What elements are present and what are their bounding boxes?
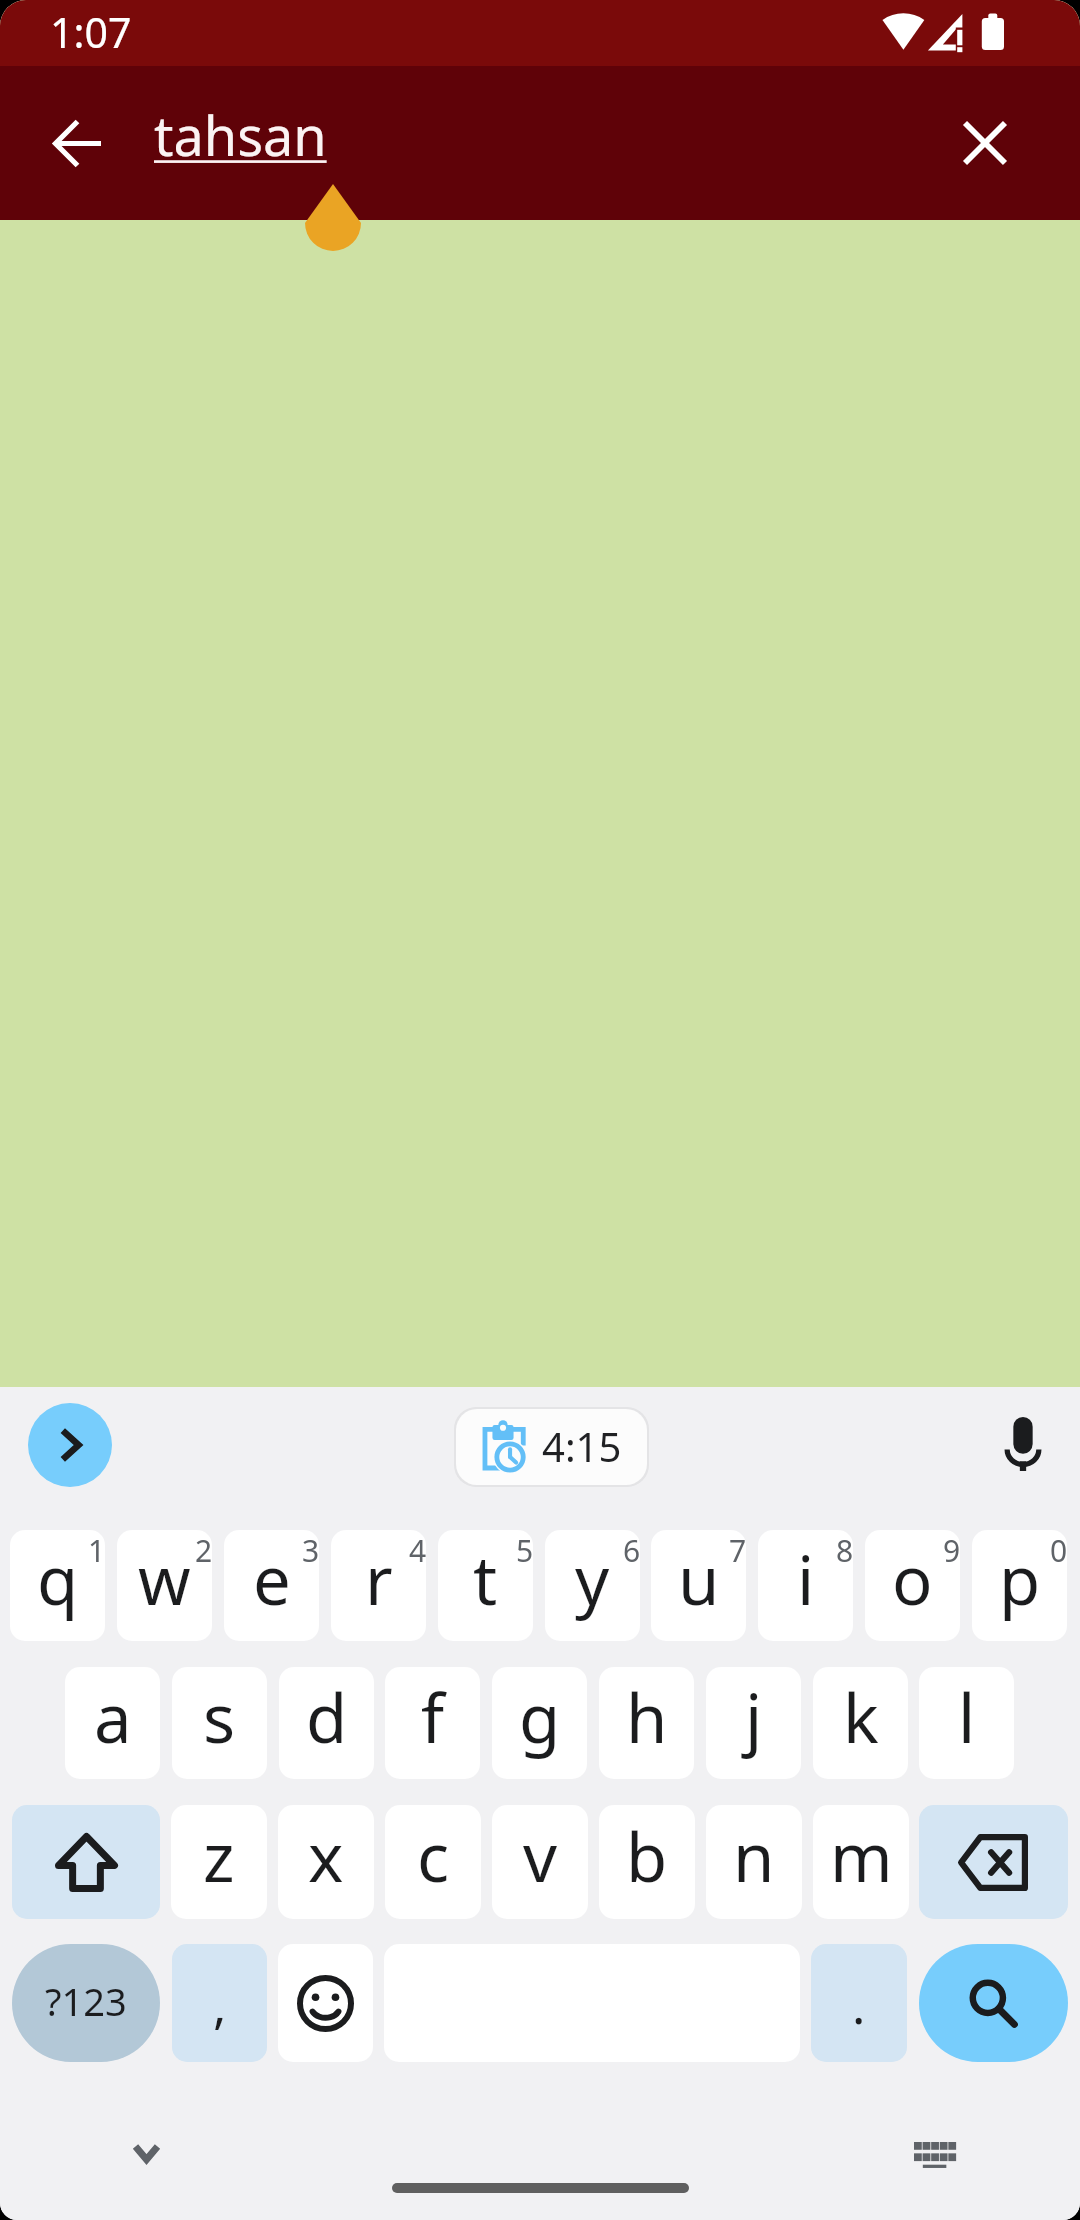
staticText: , bbox=[213, 1971, 227, 2039]
staticText: u bbox=[678, 1533, 720, 1624]
button[interactable]: e bbox=[224, 1530, 319, 1641]
button[interactable]: k bbox=[813, 1667, 908, 1779]
staticText: 6 bbox=[623, 1530, 640, 1564]
button[interactable]: x bbox=[278, 1805, 374, 1919]
button[interactable]: u bbox=[651, 1530, 746, 1641]
button[interactable]: Backspace bbox=[919, 1805, 1068, 1919]
button[interactable]: Hide keyboard bbox=[112, 2119, 180, 2187]
staticText: c bbox=[417, 1810, 450, 1901]
staticText: a bbox=[94, 1671, 132, 1762]
staticText: 4:15 bbox=[542, 1419, 622, 1473]
button[interactable]: Voice input bbox=[978, 1399, 1068, 1489]
button[interactable]: y bbox=[545, 1530, 640, 1641]
button[interactable]: f bbox=[385, 1667, 480, 1779]
staticText: 2 bbox=[195, 1530, 212, 1564]
staticText: n bbox=[733, 1810, 775, 1901]
staticText: e bbox=[253, 1533, 291, 1624]
staticText: p bbox=[999, 1533, 1041, 1624]
staticText: k bbox=[843, 1671, 879, 1762]
staticText: 7 bbox=[729, 1530, 746, 1564]
staticText: ?123 bbox=[45, 1975, 127, 2027]
staticText: 8 bbox=[836, 1530, 853, 1564]
staticText: f bbox=[421, 1671, 445, 1762]
button[interactable]: Search bbox=[919, 1944, 1068, 2062]
button[interactable]: v bbox=[492, 1805, 588, 1919]
button[interactable]: q bbox=[10, 1530, 105, 1641]
staticText: x bbox=[308, 1810, 344, 1901]
button[interactable]: Emoji bbox=[278, 1944, 373, 2062]
staticText: 1:07 bbox=[50, 4, 132, 60]
staticText: i bbox=[797, 1533, 815, 1624]
button[interactable]: j bbox=[706, 1667, 801, 1779]
button[interactable]: i bbox=[758, 1530, 853, 1641]
button[interactable]: z bbox=[171, 1805, 267, 1919]
button[interactable]: Symbols bbox=[12, 1944, 160, 2062]
staticText: o bbox=[892, 1533, 933, 1624]
staticText: b bbox=[626, 1810, 668, 1901]
staticText: q bbox=[37, 1533, 79, 1624]
button[interactable]: p bbox=[972, 1530, 1067, 1641]
button[interactable]: 4:15 bbox=[456, 1409, 647, 1485]
button[interactable]: Period bbox=[811, 1944, 907, 2062]
staticText: z bbox=[203, 1810, 235, 1901]
staticText: 3 bbox=[302, 1530, 319, 1564]
staticText: s bbox=[203, 1671, 236, 1762]
button[interactable]: Expand toolbar bbox=[28, 1403, 112, 1487]
staticText: 1 bbox=[88, 1530, 105, 1564]
button[interactable]: r bbox=[331, 1530, 426, 1641]
staticText: r bbox=[365, 1533, 393, 1624]
button[interactable]: t bbox=[438, 1530, 533, 1641]
button[interactable]: m bbox=[813, 1805, 909, 1919]
staticText: m bbox=[830, 1810, 893, 1901]
button[interactable]: Comma bbox=[172, 1944, 267, 2062]
staticText: d bbox=[306, 1671, 348, 1762]
button[interactable]: Clear search bbox=[930, 66, 1040, 220]
button[interactable]: g bbox=[492, 1667, 587, 1779]
button[interactable]: d bbox=[279, 1667, 374, 1779]
staticText: 0 bbox=[1050, 1530, 1067, 1564]
staticText: w bbox=[138, 1533, 191, 1624]
staticText: v bbox=[523, 1810, 558, 1901]
staticText: 5 bbox=[516, 1530, 533, 1564]
staticText: tahsan bbox=[154, 98, 327, 172]
staticText: 9 bbox=[943, 1530, 960, 1564]
button[interactable]: l bbox=[919, 1667, 1014, 1779]
button[interactable]: o bbox=[865, 1530, 960, 1641]
button[interactable]: Shift bbox=[12, 1805, 160, 1919]
staticText: y bbox=[575, 1533, 610, 1624]
button[interactable]: Switch input method bbox=[901, 2120, 969, 2188]
staticText: l bbox=[958, 1671, 976, 1762]
button[interactable]: tahsan bbox=[154, 66, 894, 220]
button[interactable]: c bbox=[385, 1805, 481, 1919]
button[interactable]: h bbox=[599, 1667, 694, 1779]
button[interactable]: a bbox=[65, 1667, 160, 1779]
button[interactable]: b bbox=[599, 1805, 695, 1919]
staticText: j bbox=[745, 1671, 763, 1762]
staticText: . bbox=[852, 1971, 866, 2039]
staticText: g bbox=[519, 1671, 561, 1762]
staticText: h bbox=[626, 1671, 668, 1762]
staticText: 4 bbox=[409, 1530, 426, 1564]
button[interactable]: n bbox=[706, 1805, 802, 1919]
button[interactable]: w bbox=[117, 1530, 212, 1641]
staticText: t bbox=[473, 1533, 498, 1624]
button[interactable]: Navigate up bbox=[22, 66, 132, 220]
button[interactable]: s bbox=[172, 1667, 267, 1779]
